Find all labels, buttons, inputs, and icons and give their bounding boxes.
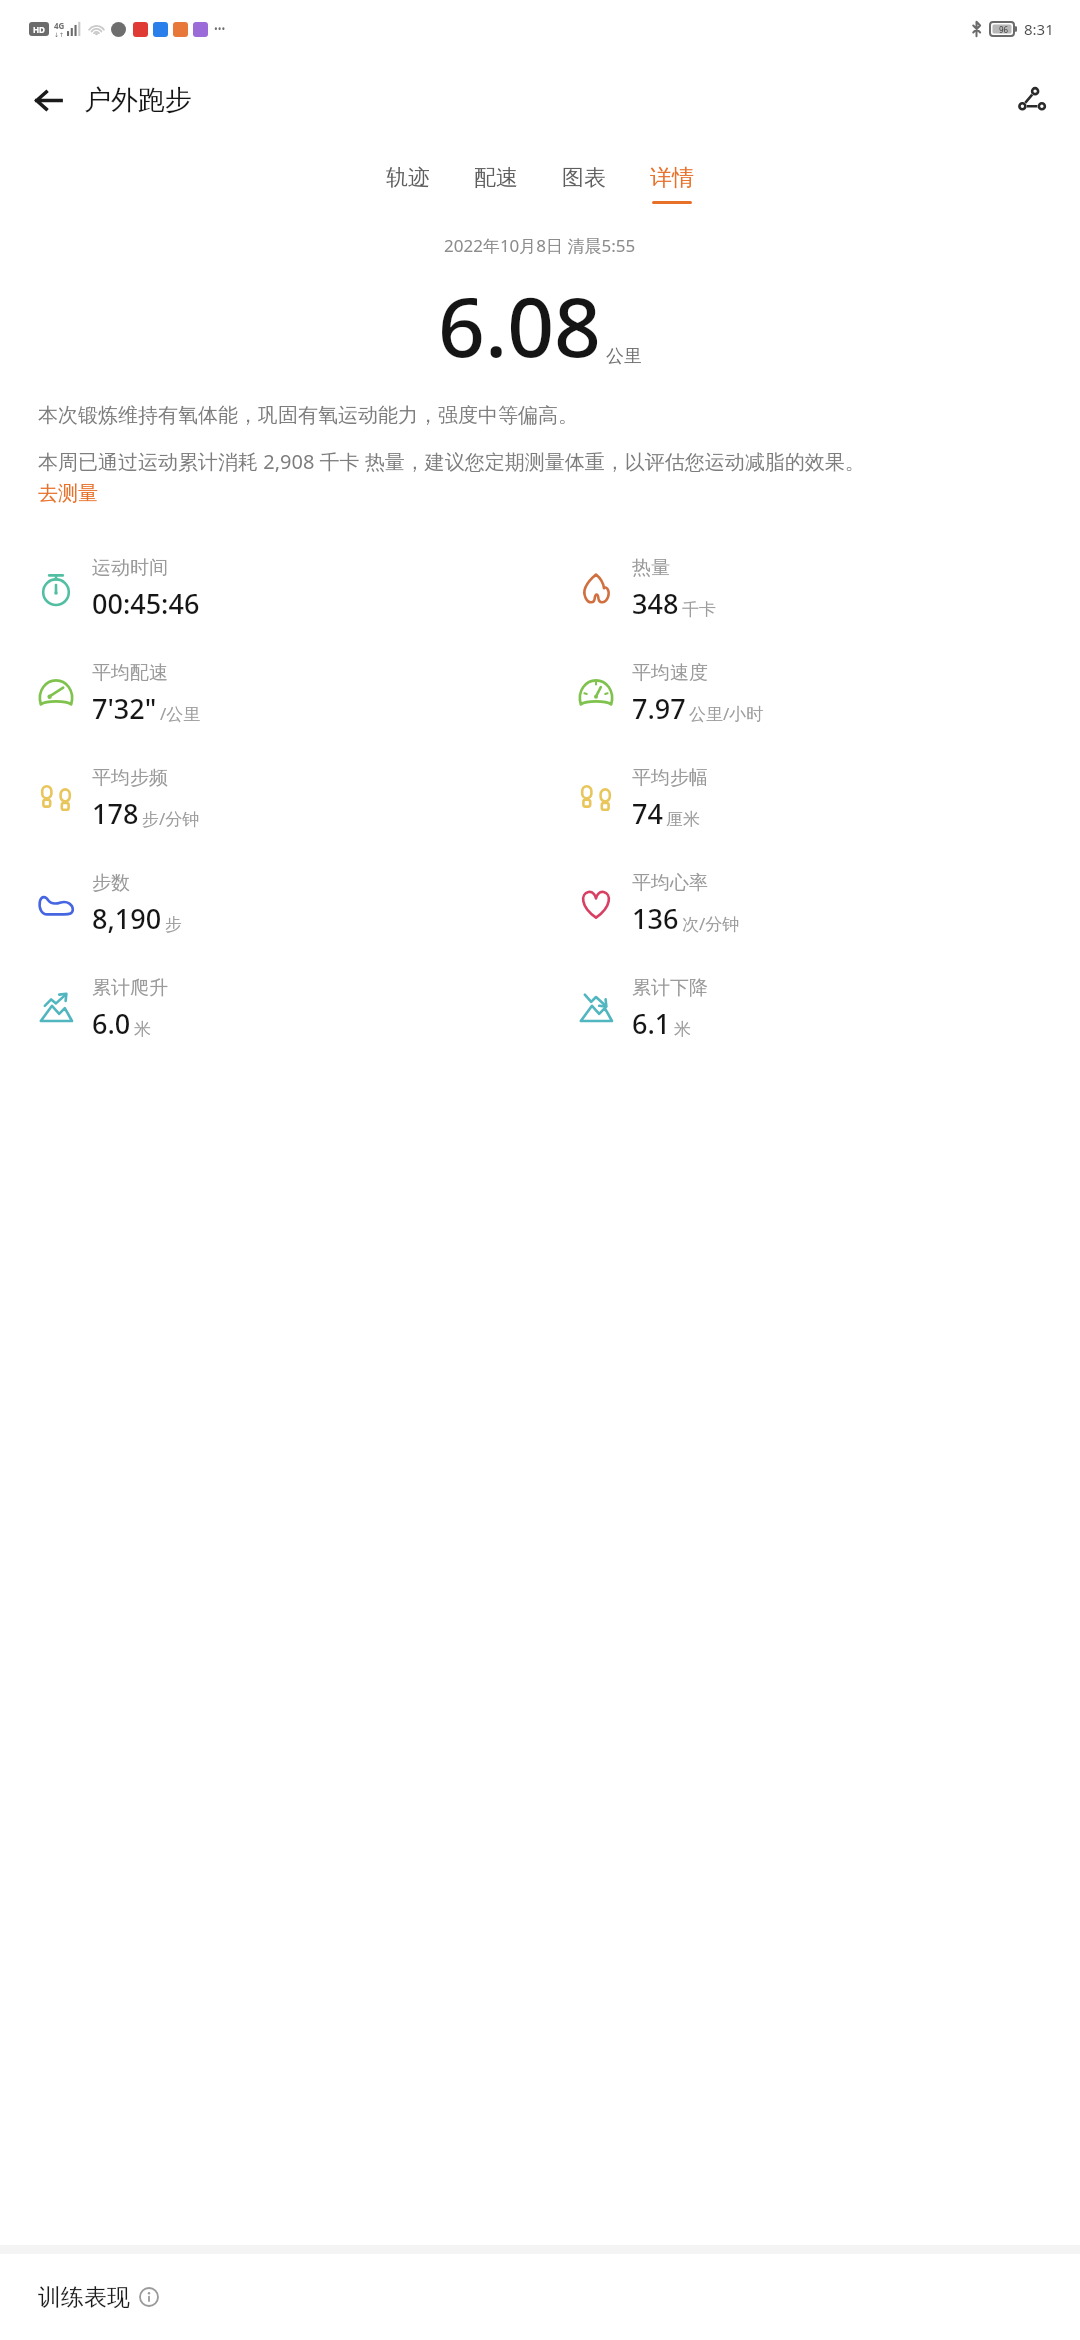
staticText: HD xyxy=(33,24,45,35)
staticText: 6.08 xyxy=(438,269,602,381)
button[interactable]: 运动时间 xyxy=(36,536,540,641)
staticText: 平均速度 xyxy=(632,661,708,685)
staticText: ↓↑ xyxy=(54,31,65,38)
staticText: 热量 xyxy=(632,556,670,580)
staticText: 6.0 xyxy=(92,1005,131,1042)
staticText: 00:45:46 xyxy=(92,585,200,622)
button[interactable]: 配速 xyxy=(474,164,518,204)
button[interactable]: Share xyxy=(1006,74,1058,126)
staticText: 348 xyxy=(632,585,679,622)
staticText: 公里 xyxy=(606,345,642,368)
staticText: 8,190 xyxy=(92,900,162,937)
staticText: 公里/小时 xyxy=(689,702,764,725)
staticText: 8:31 xyxy=(1024,19,1054,39)
staticText: 2022年10月8日 清晨5:55 xyxy=(444,234,636,257)
staticText: 户外跑步 xyxy=(84,83,192,117)
staticText: 米 xyxy=(674,1019,691,1040)
staticText: 74 xyxy=(632,795,663,832)
staticText: 去测量 xyxy=(38,481,98,506)
staticText: 配速 xyxy=(474,164,518,192)
staticText: 轨迹 xyxy=(386,164,430,192)
button[interactable]: 轨迹 xyxy=(386,164,430,204)
staticText: 运动时间 xyxy=(92,556,168,580)
staticText: 本次锻炼维持有氧体能，巩固有氧运动能力，强度中等偏高。 xyxy=(38,403,578,428)
button[interactable]: 累计下降 xyxy=(576,956,1080,1061)
staticText: 千卡 xyxy=(682,599,716,620)
staticText: 7.97 xyxy=(632,690,686,727)
staticText: 本周已通过运动累计消耗 2,908 千卡 热量，建议您定期测量体重，以评估您运动… xyxy=(38,448,865,475)
button[interactable]: 累计爬升 xyxy=(36,956,540,1061)
button[interactable]: 平均速度 xyxy=(576,641,1080,746)
staticText: 步 xyxy=(165,914,182,935)
button[interactable]: 平均步幅 xyxy=(576,746,1080,851)
staticText: 详情 xyxy=(650,164,694,192)
staticText: 136 xyxy=(632,900,679,937)
button[interactable]: 图表 xyxy=(562,164,606,204)
button[interactable]: 平均步频 xyxy=(36,746,540,851)
staticText: 米 xyxy=(134,1019,151,1040)
staticText: 厘米 xyxy=(666,809,700,830)
staticText: 4G xyxy=(54,20,65,31)
staticText: 平均配速 xyxy=(92,661,168,685)
staticText: 步数 xyxy=(92,871,130,895)
button[interactable]: 训练表现 xyxy=(0,2254,1080,2340)
staticText: 平均步幅 xyxy=(632,766,708,790)
staticText: 178 xyxy=(92,795,139,832)
button[interactable]: 平均心率 xyxy=(576,851,1080,956)
staticText: 图表 xyxy=(562,164,606,192)
staticText: 步/分钟 xyxy=(142,807,200,830)
button[interactable]: 步数 xyxy=(36,851,540,956)
staticText: 平均心率 xyxy=(632,871,708,895)
staticText: 7'32" xyxy=(92,690,157,727)
button[interactable]: 去测量 xyxy=(38,481,98,506)
staticText: 平均步频 xyxy=(92,766,168,790)
staticText: 96 xyxy=(999,24,1009,35)
staticText: /公里 xyxy=(160,702,201,725)
button[interactable]: 详情 xyxy=(650,164,694,204)
button[interactable]: Back xyxy=(22,74,74,126)
staticText: 训练表现 xyxy=(38,2283,130,2312)
staticText: 累计下降 xyxy=(632,976,708,1000)
staticText: 次/分钟 xyxy=(682,912,740,935)
button[interactable]: 平均配速 xyxy=(36,641,540,746)
staticText: 累计爬升 xyxy=(92,976,168,1000)
staticText: ••• xyxy=(214,22,226,36)
button[interactable]: 热量 xyxy=(576,536,1080,641)
staticText: 6.1 xyxy=(632,1005,671,1042)
